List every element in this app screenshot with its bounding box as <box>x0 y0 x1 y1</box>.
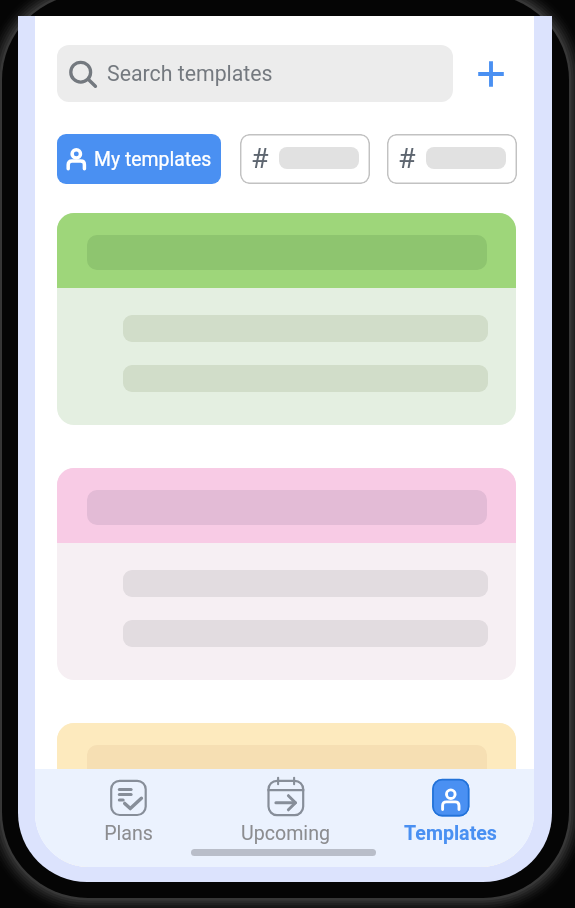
staticText: # <box>251 142 269 175</box>
staticText: Search templates <box>107 61 273 86</box>
button[interactable]: My templates <box>57 134 221 184</box>
button[interactable] <box>57 213 516 425</box>
staticText: Upcoming <box>241 822 330 844</box>
button[interactable]: Upcoming <box>230 769 340 844</box>
button[interactable]: # <box>240 134 370 184</box>
staticText: Templates <box>404 822 497 844</box>
staticText: Plans <box>104 822 153 844</box>
button[interactable]: Plans <box>73 769 183 844</box>
button[interactable]: Templates <box>395 769 505 844</box>
button[interactable]: # <box>387 134 517 184</box>
button[interactable]: Search templates <box>57 45 453 102</box>
staticText: My templates <box>94 148 212 171</box>
button[interactable]: New template <box>469 52 513 96</box>
button[interactable] <box>57 723 516 867</box>
button[interactable] <box>57 468 516 680</box>
staticText: # <box>398 142 416 175</box>
